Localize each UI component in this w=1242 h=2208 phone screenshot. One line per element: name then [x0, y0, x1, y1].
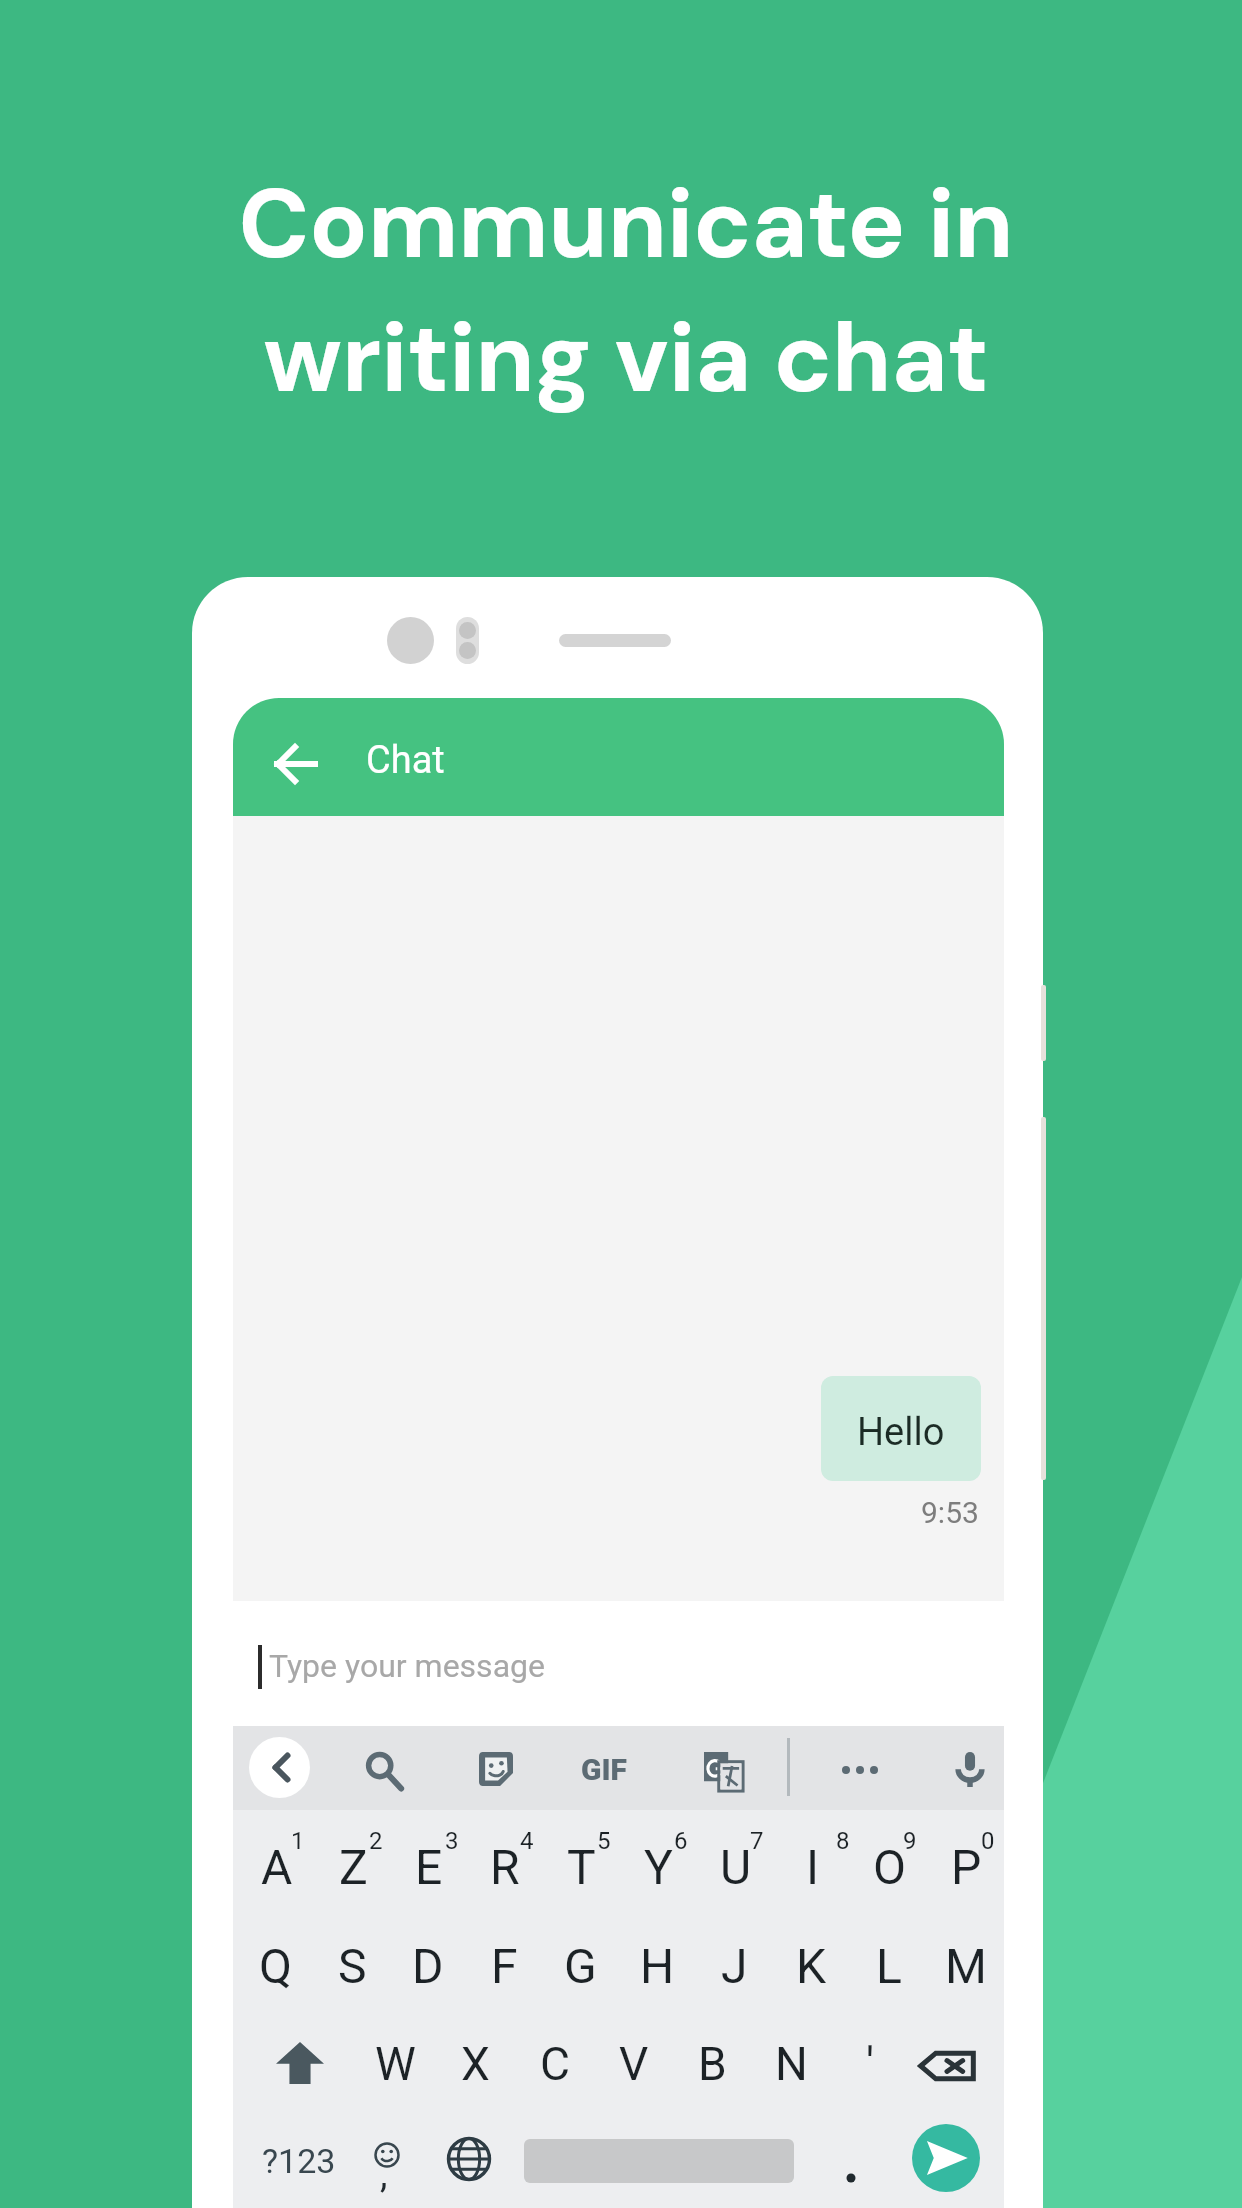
staticText: C [540, 2037, 570, 2091]
staticText: ' [866, 2037, 875, 2091]
button[interactable]: E [390, 1810, 466, 1910]
button[interactable]: F [466, 1910, 542, 2010]
staticText: Type your message [269, 1647, 545, 1685]
staticText: 2 [369, 1827, 383, 1855]
staticText: Hello [857, 1410, 945, 1455]
staticText: X [461, 2037, 490, 2091]
button[interactable]: Change language [429, 2124, 509, 2194]
button[interactable]: Close keyboard [249, 1737, 310, 1798]
staticText: V [619, 2037, 649, 2091]
staticText: K [796, 1938, 827, 1994]
staticText: D [412, 1938, 444, 1994]
button[interactable]: ' [831, 2010, 910, 2110]
staticText: U [720, 1839, 752, 1895]
staticText: E [415, 1839, 443, 1895]
button[interactable]: Translate [704, 1752, 743, 1791]
staticText: Chat [366, 738, 445, 783]
button[interactable]: Emoji [355, 2122, 437, 2196]
staticText: W [375, 2037, 416, 2091]
staticText: 4 [520, 1827, 534, 1855]
staticText: 6 [674, 1827, 688, 1855]
button[interactable]: More options [842, 1766, 878, 1774]
staticText: G [564, 1938, 597, 1994]
button[interactable]: Y [619, 1810, 696, 1910]
button[interactable]: Search [366, 1753, 403, 1790]
button[interactable]: Q [238, 1910, 314, 2010]
button[interactable]: GIF [563, 1738, 643, 1798]
staticText: , [380, 2152, 388, 2197]
staticText: T [567, 1839, 596, 1895]
staticText: H [640, 1938, 675, 1994]
staticText: ?123 [262, 2141, 336, 2181]
button[interactable] [821, 2132, 881, 2192]
button[interactable]: Voice input [952, 1752, 988, 1788]
staticText: 1 [291, 1827, 305, 1855]
staticText: 7 [750, 1827, 764, 1855]
staticText: 9 [903, 1827, 917, 1855]
staticText: Y [644, 1839, 673, 1895]
button[interactable]: X [435, 2010, 515, 2110]
staticText: Z [339, 1839, 368, 1895]
staticText: S [338, 1938, 367, 1994]
button[interactable]: I [773, 1810, 850, 1910]
staticText: R [490, 1839, 520, 1895]
staticText: 8 [836, 1827, 850, 1855]
staticText: 9:53 [921, 1495, 979, 1530]
staticText: Q [259, 1938, 293, 1994]
button[interactable]: A [238, 1810, 314, 1910]
button[interactable]: L [850, 1910, 927, 2010]
staticText: F [491, 1938, 518, 1994]
button[interactable]: Z [314, 1810, 390, 1910]
button[interactable]: M [927, 1910, 1004, 2010]
button[interactable]: O [850, 1810, 927, 1910]
button[interactable]: N [752, 2010, 831, 2110]
staticText: 3 [445, 1827, 459, 1855]
button[interactable]: S [314, 1910, 390, 2010]
staticText: 0 [981, 1827, 995, 1855]
button[interactable]: U [696, 1810, 773, 1910]
staticText: L [876, 1938, 902, 1994]
button[interactable]: Send [912, 2124, 980, 2192]
button[interactable]: B [673, 2010, 752, 2110]
button[interactable]: ?123 [244, 2129, 354, 2193]
button[interactable]: J [696, 1910, 773, 2010]
staticText: B [698, 2037, 727, 2091]
button[interactable]: W [355, 2010, 435, 2110]
staticText: I [806, 1839, 820, 1895]
button[interactable]: G [542, 1910, 619, 2010]
button[interactable]: D [390, 1910, 466, 2010]
button[interactable]: T [542, 1810, 619, 1910]
staticText: GIF [581, 1752, 627, 1787]
button[interactable]: V [594, 2010, 673, 2110]
staticText: A [261, 1839, 293, 1895]
staticText: M [945, 1938, 987, 1994]
staticText: P [951, 1839, 982, 1895]
staticText: N [775, 2037, 808, 2091]
staticText: Communicate in writing via chat [5, 162, 1242, 421]
staticText: J [721, 1938, 748, 1994]
staticText: 5 [597, 1827, 611, 1855]
button[interactable]: K [773, 1910, 850, 2010]
button[interactable]: Backspace [892, 2028, 1002, 2104]
button[interactable]: R [466, 1810, 542, 1910]
button[interactable]: H [619, 1910, 696, 2010]
button[interactable]: P [927, 1810, 1004, 1910]
button[interactable]: Back [263, 730, 331, 798]
button[interactable]: Shift [245, 2025, 355, 2101]
staticText: O [873, 1839, 907, 1895]
button[interactable]: Stickers [479, 1752, 513, 1786]
button[interactable]: C [515, 2010, 594, 2110]
